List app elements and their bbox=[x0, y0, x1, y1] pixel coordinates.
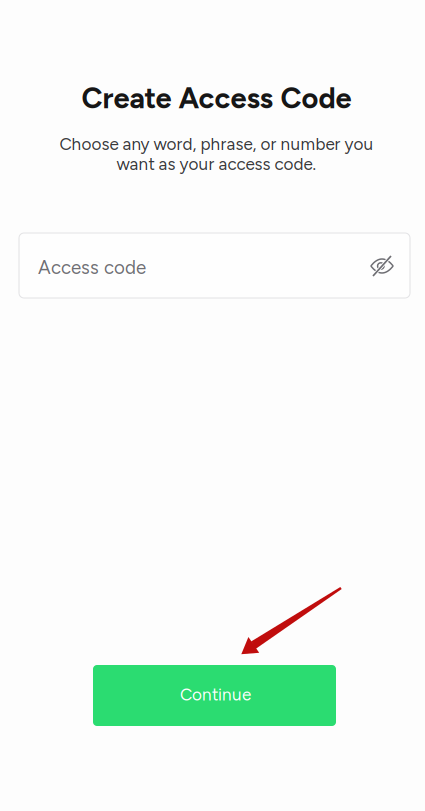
button[interactable]: Show access code bbox=[361, 245, 403, 287]
staticText: want as your access code. bbox=[116, 154, 316, 174]
button[interactable]: Access code bbox=[19, 233, 410, 298]
staticText: Access code bbox=[38, 256, 146, 279]
staticText: Choose any word, phrase, or number you bbox=[59, 134, 373, 154]
button[interactable]: Continue bbox=[93, 665, 336, 726]
staticText: Create Access Code bbox=[81, 81, 351, 115]
staticText: Continue bbox=[180, 684, 251, 705]
